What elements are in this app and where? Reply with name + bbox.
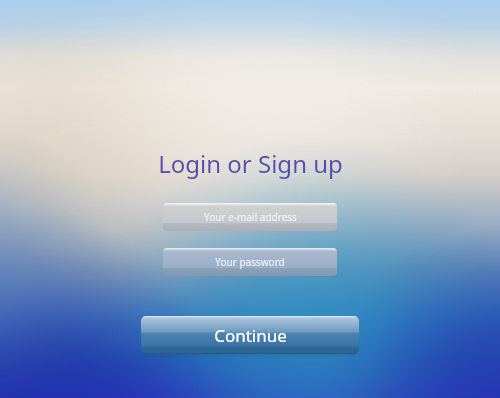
button[interactable]: Continue bbox=[141, 316, 359, 354]
staticText: Your e-mail address bbox=[204, 210, 297, 224]
button[interactable]: Your e-mail address bbox=[163, 203, 337, 231]
staticText: Continue bbox=[214, 324, 287, 347]
staticText: Your password bbox=[215, 255, 285, 269]
button[interactable]: Your password bbox=[163, 248, 337, 276]
staticText: Login or Sign up bbox=[158, 147, 343, 180]
